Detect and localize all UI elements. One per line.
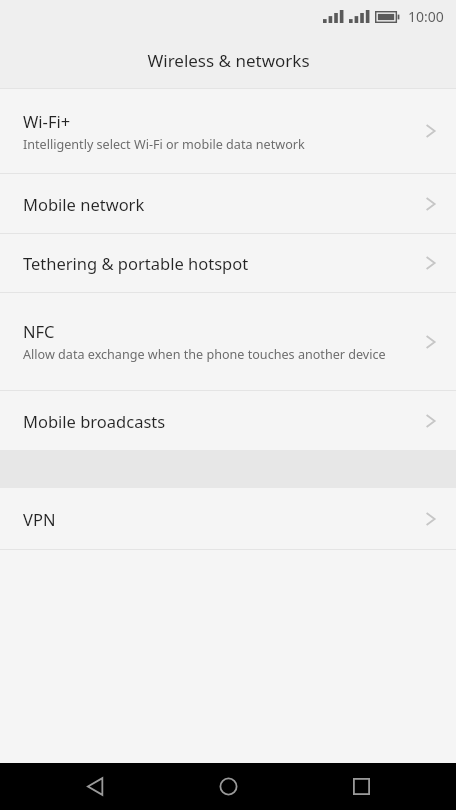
staticText: 10:00 <box>408 7 444 26</box>
staticText: Allow data exchange when the phone touch… <box>23 346 386 363</box>
button[interactable]: Mobile network <box>0 174 456 233</box>
button[interactable]: Wi-Fi+ <box>0 89 456 173</box>
staticText: Mobile network <box>23 193 145 215</box>
staticText: NFC <box>23 320 55 342</box>
button[interactable]: Recent apps <box>323 763 399 810</box>
button[interactable]: Tethering & portable hotspot <box>0 234 456 292</box>
staticText: VPN <box>23 508 56 530</box>
button[interactable]: Mobile broadcasts <box>0 391 456 450</box>
staticText: Wi-Fi+ <box>23 110 71 132</box>
staticText: Intelligently select Wi-Fi or mobile dat… <box>23 136 305 153</box>
staticText: Wireless & networks <box>147 49 310 72</box>
button[interactable]: NFC <box>0 293 456 390</box>
staticText: Mobile broadcasts <box>23 410 166 432</box>
button[interactable]: VPN <box>0 488 456 549</box>
button[interactable]: Back <box>57 763 133 810</box>
staticText: Tethering & portable hotspot <box>23 252 249 274</box>
button[interactable]: Home <box>190 763 266 810</box>
